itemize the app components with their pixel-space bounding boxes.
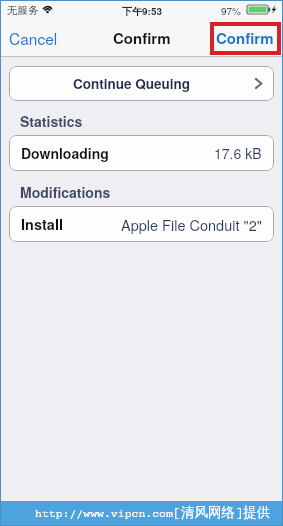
button[interactable]: Downloading <box>9 135 274 171</box>
other: More <box>255 78 262 89</box>
button[interactable]: Cancel <box>9 18 283 57</box>
staticText: Continue Queuing <box>73 74 191 93</box>
staticText: Modifications <box>20 182 111 202</box>
staticText: 下午9:53 <box>122 4 163 18</box>
button[interactable]: Install <box>9 206 274 242</box>
staticText: 97% <box>221 4 242 18</box>
staticText: Confirm <box>216 27 274 48</box>
staticText: 17.6 kB <box>214 143 262 163</box>
staticText: Downloading <box>21 143 109 163</box>
staticText: Statistics <box>20 111 83 131</box>
staticText: http://www.vipcn.com <box>35 508 173 521</box>
staticText: Confirm <box>113 27 171 48</box>
staticText: [清风网络]提供 <box>173 504 271 522</box>
button[interactable]: Confirm <box>216 27 274 48</box>
button[interactable]: Continue Queuing <box>9 66 274 101</box>
staticText: Install <box>21 214 63 235</box>
staticText: 无服务 <box>7 4 39 17</box>
staticText: Cancel <box>9 27 58 49</box>
staticText: Apple File Conduit "2" <box>121 214 262 235</box>
